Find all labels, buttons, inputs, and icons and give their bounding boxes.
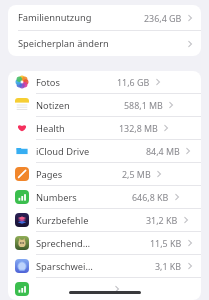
staticText: Notizen [36, 99, 70, 112]
button[interactable]: Speicherplan ändern [8, 31, 201, 56]
staticText: iCloud Drive [36, 145, 90, 158]
staticText: 588,1 MB [124, 99, 163, 111]
staticText: 3,1 KB [155, 260, 182, 272]
staticText: Sprechende Katze Em… [36, 237, 93, 250]
staticText: 11,5 KB [150, 237, 182, 249]
staticText: 646,8 KB [132, 191, 169, 203]
staticText: Fotos [36, 76, 60, 89]
button[interactable]: Pages [8, 163, 201, 185]
staticText: Pages [36, 168, 63, 181]
staticText: Familiennutzung [18, 11, 92, 24]
button[interactable]: Numbers [8, 186, 201, 208]
button[interactable]: Notizen [8, 94, 201, 116]
staticText: 236,4 GB [144, 12, 182, 24]
button[interactable]: Health [8, 117, 201, 139]
button[interactable]: Kurzbefehle [8, 209, 201, 231]
staticText: Speicherplan ändern [18, 37, 109, 50]
staticText: Numbers [36, 191, 77, 204]
button[interactable]: Sprechende Katze Em… [8, 232, 201, 254]
staticText: 132,8 MB [119, 122, 158, 134]
other: Home indicator [69, 291, 141, 294]
staticText: Sparschwein – Geld sp… [36, 260, 95, 273]
staticText: Kurzbefehle [36, 214, 89, 227]
button[interactable]: Sparschwein – Geld sp… [8, 255, 201, 277]
staticText: Health [36, 122, 65, 135]
button[interactable]: Fotos [8, 71, 201, 93]
staticText: 84,4 MB [146, 145, 180, 157]
staticText: 11,6 GB [117, 76, 150, 88]
button[interactable]: iCloud Drive [8, 140, 201, 162]
button[interactable] [8, 278, 201, 300]
staticText: 31,2 KB [146, 214, 178, 226]
staticText: 2,5 MB [122, 168, 151, 180]
button[interactable]: Familiennutzung [8, 5, 201, 30]
